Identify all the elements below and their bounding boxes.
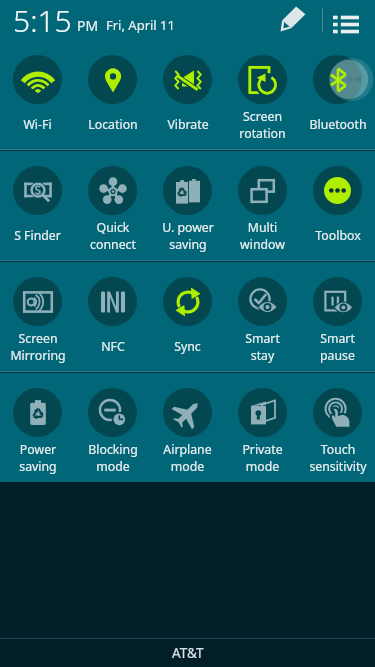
staticText: U. power saving — [162, 219, 214, 252]
button[interactable]: Smart stay — [225, 262, 300, 373]
staticText: PM — [77, 16, 99, 35]
button[interactable]: Edit — [264, 0, 322, 40]
staticText: 5:15 — [13, 0, 72, 40]
staticText: AT&T — [172, 644, 204, 662]
staticText: Smart stay — [245, 330, 280, 363]
button[interactable]: Location — [75, 40, 150, 151]
staticText: Screen rotation — [239, 108, 286, 141]
button[interactable]: S Finder — [0, 151, 75, 262]
staticText: Multi window — [240, 219, 285, 252]
staticText: Bluetooth — [309, 116, 367, 133]
button[interactable]: U. power saving — [150, 151, 225, 262]
staticText: S Finder — [14, 227, 61, 244]
staticText: Toolbox — [315, 227, 361, 244]
button[interactable]: Sync — [150, 262, 225, 373]
button[interactable]: Private mode — [225, 373, 300, 482]
button[interactable]: Toolbox — [300, 151, 375, 262]
button[interactable]: NFC — [75, 262, 150, 373]
button[interactable]: Power saving — [0, 373, 75, 482]
button[interactable]: Smart pause — [300, 262, 375, 373]
button[interactable]: Vibrate — [150, 40, 225, 151]
button[interactable]: Quick connect — [75, 151, 150, 262]
button[interactable]: List — [323, 0, 369, 40]
staticText: Touch sensitivity — [309, 441, 367, 474]
button[interactable]: Multi window — [225, 151, 300, 262]
staticText: Wi-Fi — [23, 116, 52, 133]
staticText: Fri, April 11 — [106, 16, 175, 34]
button[interactable]: Bluetooth — [300, 40, 375, 151]
button[interactable]: Touch sensitivity — [300, 373, 375, 482]
staticText: Vibrate — [167, 116, 209, 133]
button[interactable]: Screen rotation — [225, 40, 300, 151]
staticText: Power saving — [19, 441, 57, 474]
staticText: Airplane mode — [163, 441, 212, 474]
staticText: NFC — [101, 338, 125, 355]
staticText: Smart pause — [320, 330, 355, 363]
staticText: Sync — [174, 338, 201, 355]
staticText: Quick connect — [90, 219, 136, 252]
staticText: Blocking mode — [88, 441, 138, 474]
button[interactable]: Screen Mirroring — [0, 262, 75, 373]
button[interactable]: Airplane mode — [150, 373, 225, 482]
staticText: Location — [88, 116, 138, 133]
button[interactable]: Wi-Fi — [0, 40, 75, 151]
button[interactable]: Blocking mode — [75, 373, 150, 482]
staticText: Private mode — [242, 441, 283, 474]
staticText: Screen Mirroring — [10, 330, 66, 363]
